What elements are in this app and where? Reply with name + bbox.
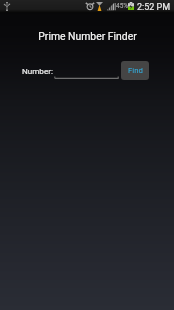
staticText: Find bbox=[128, 66, 143, 75]
other: USB connected bbox=[4, 2, 10, 11]
button[interactable]: Find bbox=[121, 61, 149, 80]
staticText: 2:52 PM bbox=[137, 2, 171, 13]
staticText: Prime Number Finder bbox=[38, 30, 137, 42]
button[interactable] bbox=[54, 62, 119, 80]
staticText: 45% bbox=[116, 2, 129, 10]
staticText: Number: bbox=[22, 66, 53, 75]
